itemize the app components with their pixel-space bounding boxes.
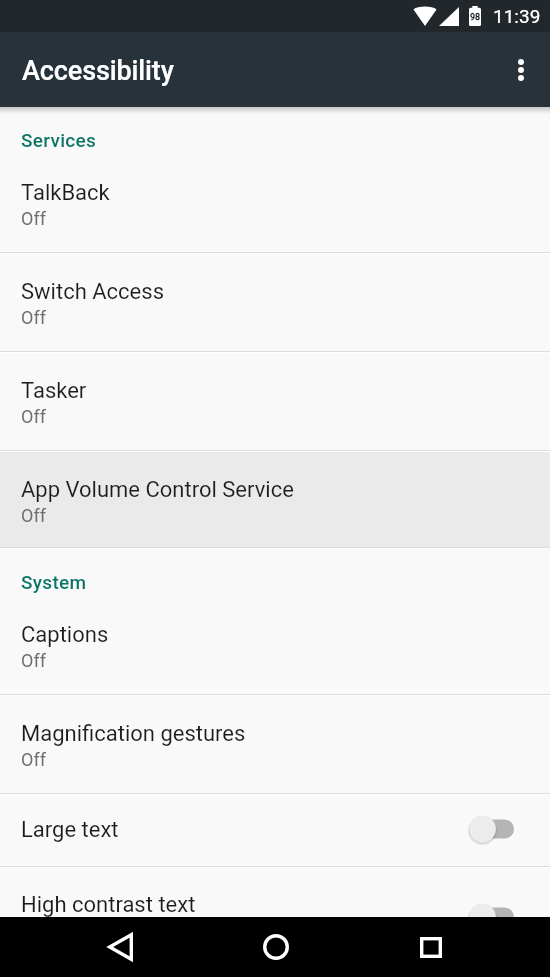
- staticText: App Volume Control Service: [21, 477, 294, 503]
- staticText: Off: [21, 406, 46, 427]
- staticText: High contrast text: [21, 892, 196, 917]
- button[interactable]: App Volume Control Service: [0, 452, 550, 547]
- button[interactable]: More options: [492, 32, 550, 107]
- staticText: Accessibility: [22, 55, 174, 87]
- button[interactable]: Switch Access: [0, 254, 550, 351]
- staticText: TalkBack: [21, 180, 110, 206]
- staticText: 98: [470, 12, 481, 23]
- staticText: Off: [21, 749, 46, 770]
- button[interactable]: High contrast text: [0, 868, 550, 917]
- button[interactable]: Captions: [0, 597, 550, 694]
- staticText: Off: [21, 650, 46, 671]
- staticText: Tasker: [21, 378, 87, 404]
- staticText: Switch Access: [21, 279, 164, 305]
- staticText: Off: [21, 307, 46, 328]
- button[interactable]: TalkBack: [0, 155, 550, 252]
- button[interactable]: Tasker: [0, 353, 550, 450]
- staticText: System: [21, 571, 87, 593]
- staticText: Large text: [21, 817, 469, 843]
- button[interactable]: Magnification gestures: [0, 696, 550, 793]
- button[interactable]: Back: [86, 917, 155, 977]
- staticText: Services: [21, 129, 97, 151]
- button[interactable]: Large text: [0, 795, 550, 866]
- staticText: Off: [21, 208, 46, 229]
- staticText: Off: [21, 505, 46, 526]
- staticText: Magnification gestures: [21, 721, 246, 747]
- staticText: 11:39: [493, 5, 541, 27]
- button[interactable]: Recents: [396, 917, 465, 977]
- staticText: Captions: [21, 622, 109, 648]
- button[interactable]: Home: [241, 917, 310, 977]
